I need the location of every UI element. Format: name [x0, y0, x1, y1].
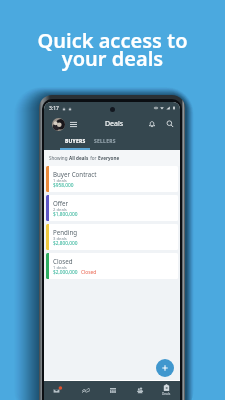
button[interactable]: Offer — [46, 195, 178, 221]
button[interactable]: Inbox — [44, 381, 72, 400]
staticText: Pending — [53, 228, 78, 236]
staticText: Deals — [162, 392, 171, 396]
button[interactable]: Deals — [153, 381, 180, 400]
button[interactable]: Pending — [46, 224, 178, 250]
staticText: Closed — [81, 269, 97, 276]
staticText: SELLERS — [94, 138, 116, 145]
staticText: 2 deals — [53, 207, 67, 213]
staticText: 3:17 — [49, 105, 59, 112]
staticText: for — [89, 155, 98, 161]
staticText: Quick access to your deals — [0, 27, 225, 72]
button[interactable]: BUYERS — [60, 134, 90, 150]
button[interactable]: Calendar — [99, 381, 126, 400]
button[interactable]: Buyer Contract — [46, 166, 178, 192]
staticText: All deals — [69, 155, 89, 161]
staticText: $2,000,000 — [53, 269, 78, 276]
button[interactable]: Notifications — [146, 118, 158, 130]
staticText: Closed — [53, 257, 73, 265]
button[interactable]: Search — [164, 118, 176, 130]
button[interactable]: Add deal — [156, 359, 174, 377]
staticText: Showing — [49, 155, 69, 161]
staticText: Offer — [53, 199, 69, 207]
button[interactable]: Activity — [72, 381, 99, 400]
staticText: 1 deals — [53, 265, 67, 271]
staticText: Everyone — [98, 155, 120, 161]
staticText: Deals — [105, 119, 124, 129]
button[interactable]: Profile — [52, 118, 65, 131]
button[interactable]: Contacts — [126, 381, 153, 400]
staticText: $2,800,000 — [53, 240, 78, 247]
staticText: BUYERS — [65, 138, 86, 145]
staticText: $1,800,000 — [53, 211, 78, 218]
button[interactable]: Closed — [46, 253, 178, 279]
staticText: 1 deals — [53, 178, 67, 184]
button[interactable]: SELLERS — [90, 134, 120, 150]
button[interactable]: Menu — [68, 119, 79, 130]
staticText: Buyer Contract — [53, 170, 97, 178]
staticText: $958,000 — [53, 182, 74, 189]
staticText: 3 deals — [53, 236, 67, 242]
